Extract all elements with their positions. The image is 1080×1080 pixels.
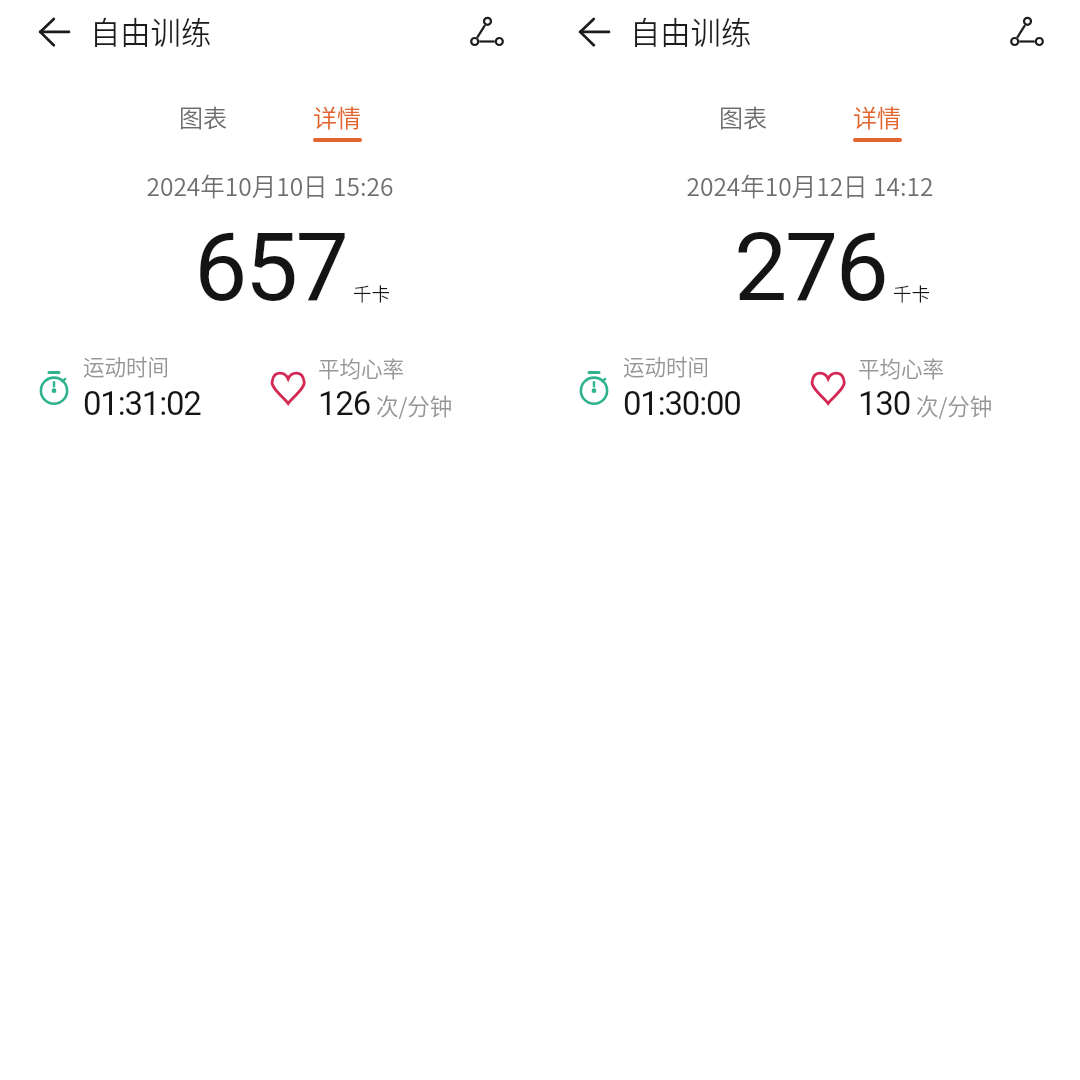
staticText: 657 xyxy=(194,212,347,323)
staticText: 2024年10月12日 14:12 xyxy=(540,168,1080,203)
button[interactable]: 图表 xyxy=(708,96,778,136)
staticText: 运动时间 xyxy=(83,350,170,381)
staticText: 自由训练 xyxy=(630,9,752,53)
staticText: 01:31:02 xyxy=(83,384,201,423)
button[interactable]: 详情 xyxy=(302,99,372,149)
button[interactable]: 运动时间 xyxy=(572,350,772,422)
button[interactable]: 平均心率 xyxy=(806,350,1006,422)
staticText: 详情 xyxy=(853,99,901,134)
button[interactable]: 详情 xyxy=(842,99,912,149)
staticText: 126 xyxy=(318,384,371,423)
staticText: 千卡 xyxy=(893,280,931,307)
staticText: 详情 xyxy=(313,99,361,134)
staticText: 276 xyxy=(734,212,887,323)
staticText: 次/分钟 xyxy=(376,389,453,422)
button[interactable]: 图表 xyxy=(168,96,238,136)
button[interactable]: Back xyxy=(30,9,78,57)
button[interactable]: Back xyxy=(570,9,618,57)
staticText: 千卡 xyxy=(353,280,391,307)
staticText: 平均心率 xyxy=(858,352,945,383)
staticText: 130 xyxy=(858,384,911,423)
button[interactable]: Share xyxy=(466,13,508,55)
button[interactable]: Share xyxy=(1006,13,1048,55)
staticText: 图表 xyxy=(719,99,767,134)
staticText: 平均心率 xyxy=(318,352,405,383)
staticText: 01:30:00 xyxy=(623,384,741,423)
button[interactable]: 平均心率 xyxy=(266,350,466,422)
staticText: 图表 xyxy=(179,99,227,134)
staticText: 运动时间 xyxy=(623,350,710,381)
staticText: 自由训练 xyxy=(90,9,212,53)
button[interactable]: 运动时间 xyxy=(32,350,232,422)
staticText: 2024年10月10日 15:26 xyxy=(0,168,540,203)
staticText: 次/分钟 xyxy=(916,389,993,422)
